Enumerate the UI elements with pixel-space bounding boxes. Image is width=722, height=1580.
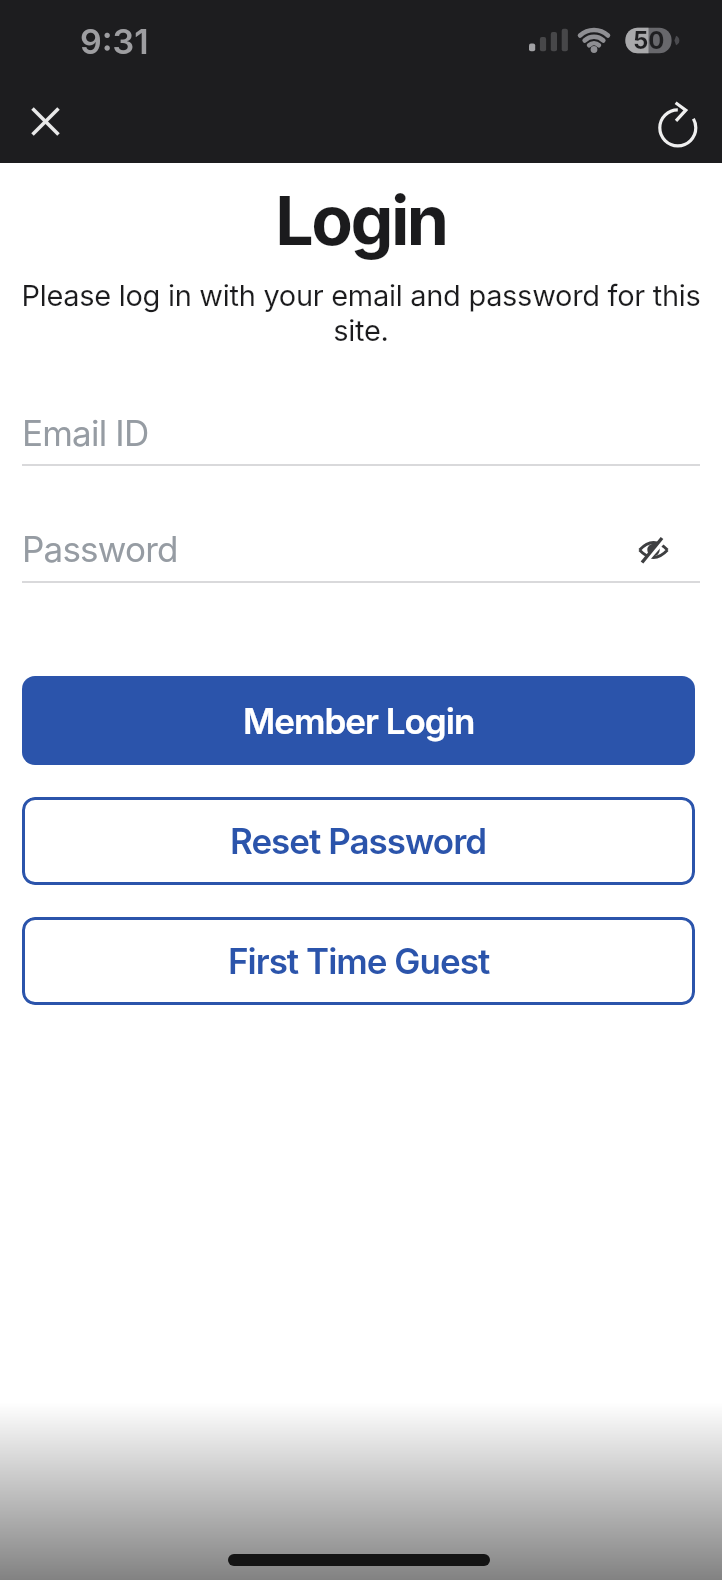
staticText: Please log in with your email and passwo… — [0, 278, 722, 348]
staticText: Password — [22, 528, 178, 570]
staticText: Login — [0, 179, 722, 261]
staticText: Member Login — [243, 700, 475, 742]
staticText: 50 — [633, 26, 665, 55]
staticText: First Time Guest — [228, 940, 490, 982]
button[interactable] — [22, 98, 68, 144]
button[interactable] — [630, 530, 676, 570]
button[interactable]: First Time Guest — [22, 917, 695, 1005]
button[interactable] — [650, 98, 698, 146]
button[interactable]: Member Login — [22, 676, 695, 765]
button[interactable]: Email ID — [0, 400, 722, 466]
staticText: Reset Password — [230, 820, 487, 862]
button[interactable]: Reset Password — [22, 797, 695, 885]
staticText: Email ID — [22, 412, 149, 454]
button[interactable]: Password — [0, 516, 722, 583]
staticText: 9:31 — [80, 21, 149, 62]
